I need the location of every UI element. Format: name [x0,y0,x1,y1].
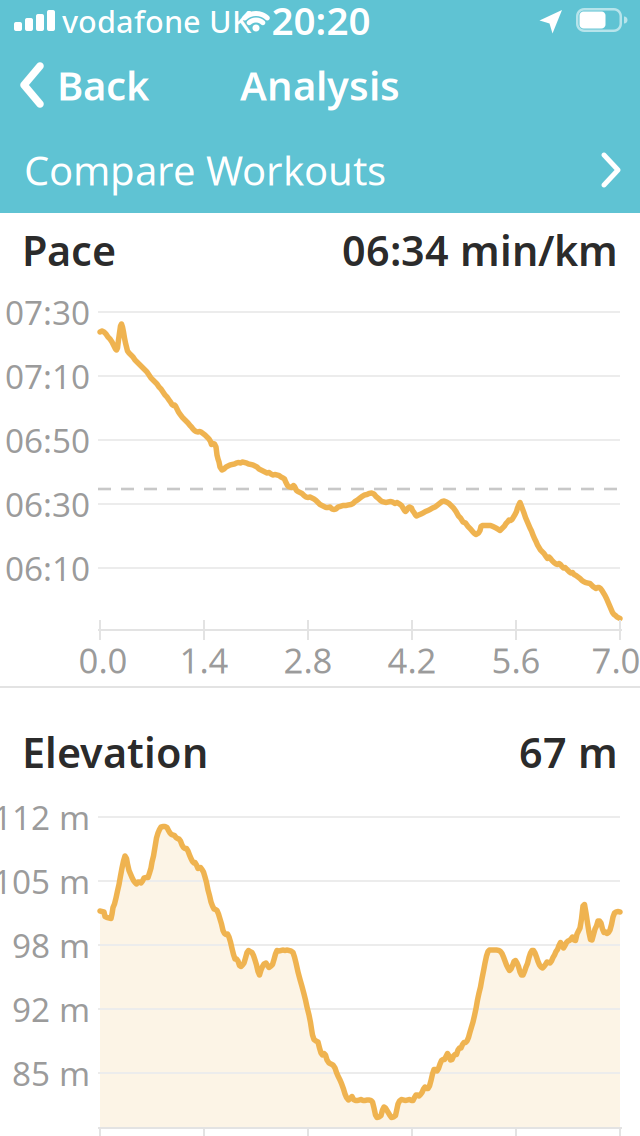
staticText: 67 m [519,725,618,779]
staticText: Pace [22,223,116,277]
button[interactable]: Compare Workouts [0,127,640,213]
staticText: Elevation [22,725,208,779]
staticText: Compare Workouts [24,143,386,196]
staticText: 92 m [12,987,90,1031]
staticText: 06:50 [5,418,90,462]
staticText: 06:10 [5,546,90,590]
staticText: 7.0 [591,637,640,683]
staticText: 2.8 [283,637,332,683]
staticText: 1.4 [179,637,228,683]
staticText: 07:10 [5,354,90,398]
staticText: 06:34 min/km [342,223,618,277]
staticText: Analysis [240,58,400,111]
staticText: 112 m [0,795,90,839]
staticText: 07:30 [5,290,90,334]
staticText: 85 m [12,1051,90,1095]
staticText: 4.2 [387,637,436,683]
staticText: 20:20 [271,0,370,46]
staticText: 0.0 [78,637,127,683]
staticText: Back [57,58,150,111]
button[interactable]: Back [20,58,240,111]
staticText: 105 m [0,859,90,903]
staticText: 06:30 [5,482,90,526]
staticText: vodafone UK [62,1,251,41]
staticText: 5.6 [491,637,540,683]
staticText: 98 m [12,923,90,967]
